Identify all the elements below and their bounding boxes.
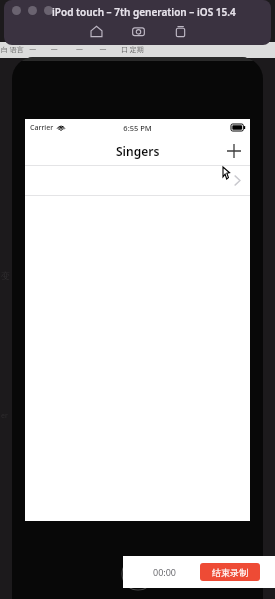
button[interactable]: [25, 166, 250, 195]
button[interactable]: Home button: [121, 557, 155, 591]
button[interactable]: Screenshot: [129, 22, 147, 40]
button[interactable]: [28, 6, 37, 15]
staticText: 结束录制: [212, 567, 248, 578]
button[interactable]: Record: [171, 22, 189, 40]
staticText: iPod touch – 7th generation – iOS 15.4: [52, 5, 236, 19]
button[interactable]: Home: [87, 22, 105, 40]
staticText: Singers: [116, 143, 160, 159]
staticText: er: [1, 411, 8, 421]
staticText: Carrier: [30, 123, 54, 133]
button[interactable]: 结束录制: [200, 563, 260, 581]
staticText: 变: [1, 270, 10, 281]
button[interactable]: [12, 6, 21, 15]
button[interactable]: Add: [223, 140, 245, 162]
staticText: 白 语言 一 一 一 一 口 定期: [1, 45, 144, 55]
staticText: 00:00: [153, 566, 177, 578]
button[interactable]: [44, 6, 53, 15]
staticText: 6:55 PM: [123, 123, 152, 133]
